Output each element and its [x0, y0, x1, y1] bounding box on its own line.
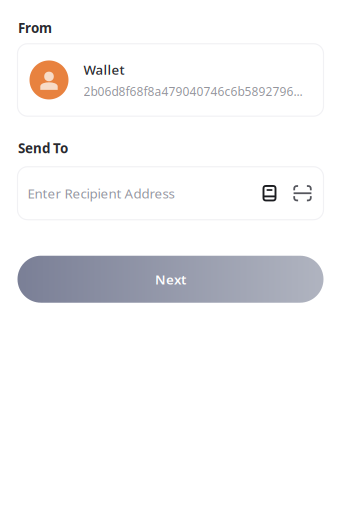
button[interactable]: Scan QR code [290, 176, 314, 210]
button[interactable]: Wallet [17, 44, 323, 116]
staticText: Enter Recipient Address [27, 184, 174, 202]
staticText: Wallet [83, 61, 124, 78]
button[interactable]: Next [17, 256, 323, 303]
staticText: From [18, 19, 52, 37]
staticText: Send To [18, 139, 68, 157]
staticText: Next [155, 270, 186, 288]
staticText: 2b06d8f68f8a479040746c6b5892796... [83, 83, 302, 99]
button[interactable]: Address book [257, 176, 281, 210]
